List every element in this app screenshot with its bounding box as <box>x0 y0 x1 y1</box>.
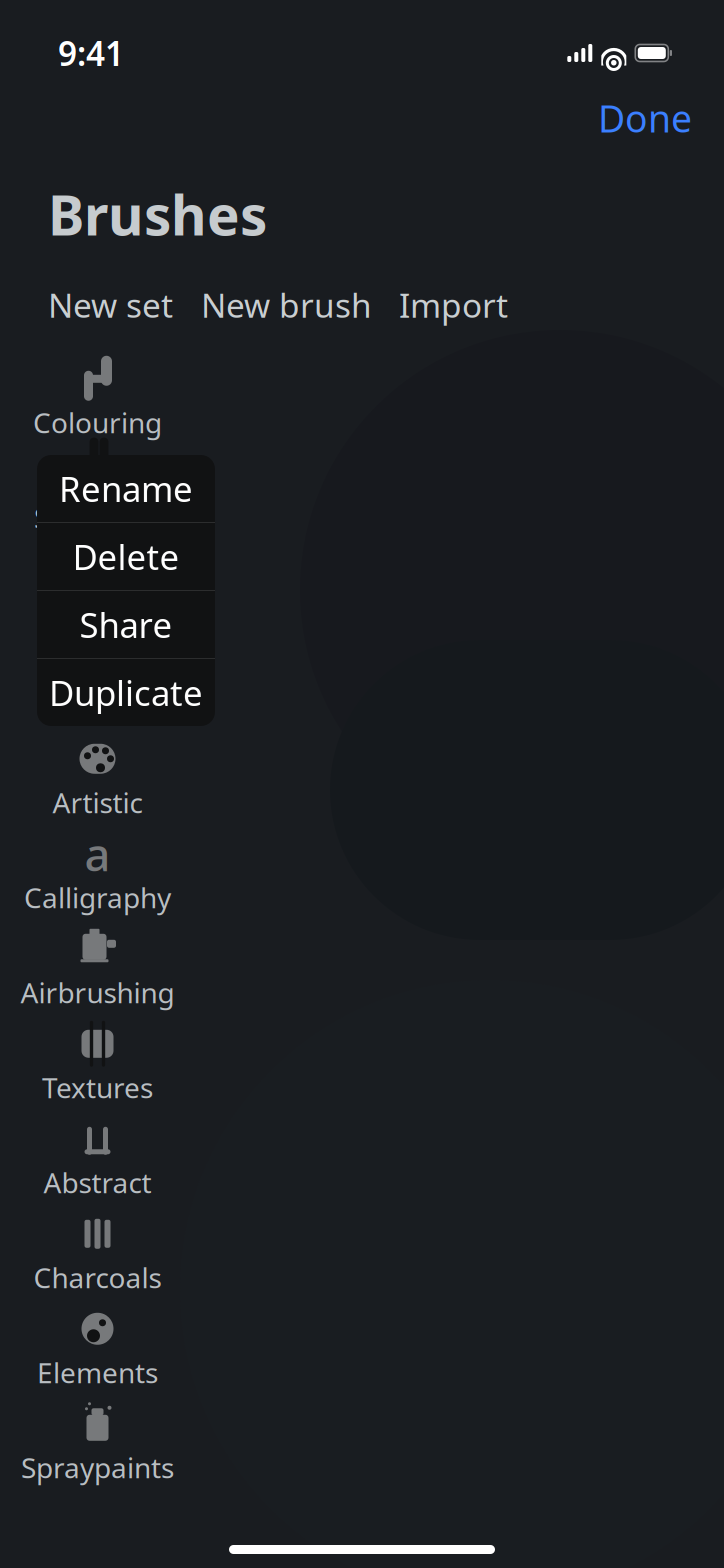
staticText: Calligraphy <box>24 879 171 916</box>
button[interactable]: Done <box>584 85 706 151</box>
button[interactable]: Painting <box>0 636 195 731</box>
staticText: Textures <box>42 1069 153 1106</box>
button[interactable]: Elements <box>0 1301 195 1396</box>
button[interactable]: New brush <box>201 277 372 333</box>
button[interactable]: a <box>0 826 195 921</box>
button[interactable]: Sketching <box>0 446 195 541</box>
staticText: Share <box>79 601 172 647</box>
button[interactable]: Abstract <box>0 1111 195 1206</box>
button[interactable]: Duplicate <box>37 659 215 726</box>
staticText: Abstract <box>43 1164 151 1201</box>
staticText: Import <box>399 283 508 327</box>
button[interactable]: Delete <box>37 523 215 591</box>
staticText: Inking <box>56 594 138 631</box>
button[interactable]: Textures <box>0 1016 195 1111</box>
staticText: New brush <box>201 283 372 327</box>
button[interactable]: Inking <box>0 541 195 636</box>
staticText: Spraypaints <box>21 1449 174 1486</box>
staticText: Done <box>598 93 692 143</box>
staticText: Delete <box>72 533 179 579</box>
staticText: Colouring <box>33 404 162 441</box>
button[interactable]: Charcoals <box>0 1206 195 1301</box>
staticText: Duplicate <box>49 669 203 715</box>
button[interactable]: Rename <box>37 455 215 523</box>
staticText: Airbrushing <box>20 974 174 1011</box>
button[interactable]: Share <box>37 591 215 659</box>
staticText: a <box>84 824 110 884</box>
button[interactable]: New set <box>48 277 173 333</box>
button[interactable]: Import <box>399 277 508 333</box>
staticText: Elements <box>37 1354 158 1391</box>
button[interactable]: Spraypaints <box>0 1396 195 1491</box>
staticText: Rename <box>59 465 193 511</box>
button[interactable]: Artistic <box>0 731 195 826</box>
staticText: New set <box>48 283 173 327</box>
staticText: Artistic <box>52 784 142 821</box>
staticText: 9:41 <box>58 31 124 75</box>
staticText: Brushes <box>48 178 267 251</box>
button[interactable]: Colouring <box>0 351 195 446</box>
button[interactable]: Airbrushing <box>0 921 195 1016</box>
staticText: Painting <box>43 689 151 726</box>
staticText: Charcoals <box>33 1259 161 1296</box>
staticText: Sketching <box>34 499 161 536</box>
